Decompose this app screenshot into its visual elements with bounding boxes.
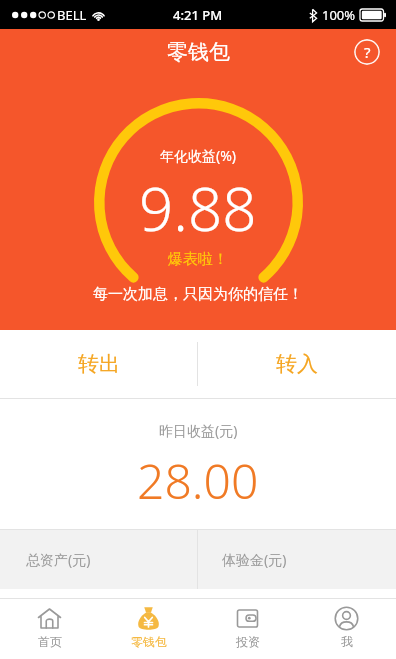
staticText: 投资 xyxy=(236,634,260,649)
staticText: 总资产(元) xyxy=(26,550,91,569)
button[interactable]: 投资 xyxy=(198,599,297,659)
staticText: BELL xyxy=(57,6,87,24)
button[interactable]: 体验金(元) xyxy=(198,530,396,589)
button[interactable]: 转入 xyxy=(198,330,396,398)
staticText: 首页 xyxy=(38,634,62,649)
staticText: 体验金(元) xyxy=(222,550,287,569)
staticText: 零钱包 xyxy=(167,39,230,65)
button[interactable]: 首页 xyxy=(0,599,99,659)
staticText: 年化收益(%) xyxy=(160,146,237,165)
staticText: 9.88 xyxy=(139,167,257,249)
staticText: 28.00 xyxy=(137,448,259,513)
staticText: 爆表啦！ xyxy=(168,250,228,269)
staticText: 每一次加息，只因为你的信任！ xyxy=(93,285,303,304)
staticText: ? xyxy=(364,42,371,62)
button[interactable]: 零钱包 xyxy=(99,599,198,659)
button[interactable]: Help xyxy=(354,39,380,65)
staticText: 100% xyxy=(322,6,356,24)
staticText: 转入 xyxy=(276,351,318,377)
button[interactable]: 转出 xyxy=(0,330,197,398)
button[interactable]: 我 xyxy=(297,599,396,659)
staticText: 零钱包 xyxy=(131,634,167,649)
staticText: 我 xyxy=(341,634,353,649)
button[interactable]: 总资产(元) xyxy=(0,530,197,589)
staticText: 昨日收益(元) xyxy=(159,421,238,440)
staticText: 转出 xyxy=(78,351,120,377)
button[interactable]: 昨日收益(元) xyxy=(0,399,396,529)
staticText: 4:21 PM xyxy=(173,6,223,24)
